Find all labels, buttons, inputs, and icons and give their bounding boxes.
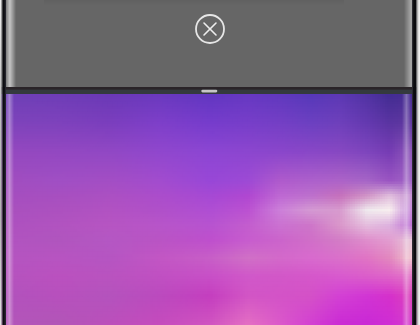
button[interactable]: Close bbox=[193, 12, 227, 46]
